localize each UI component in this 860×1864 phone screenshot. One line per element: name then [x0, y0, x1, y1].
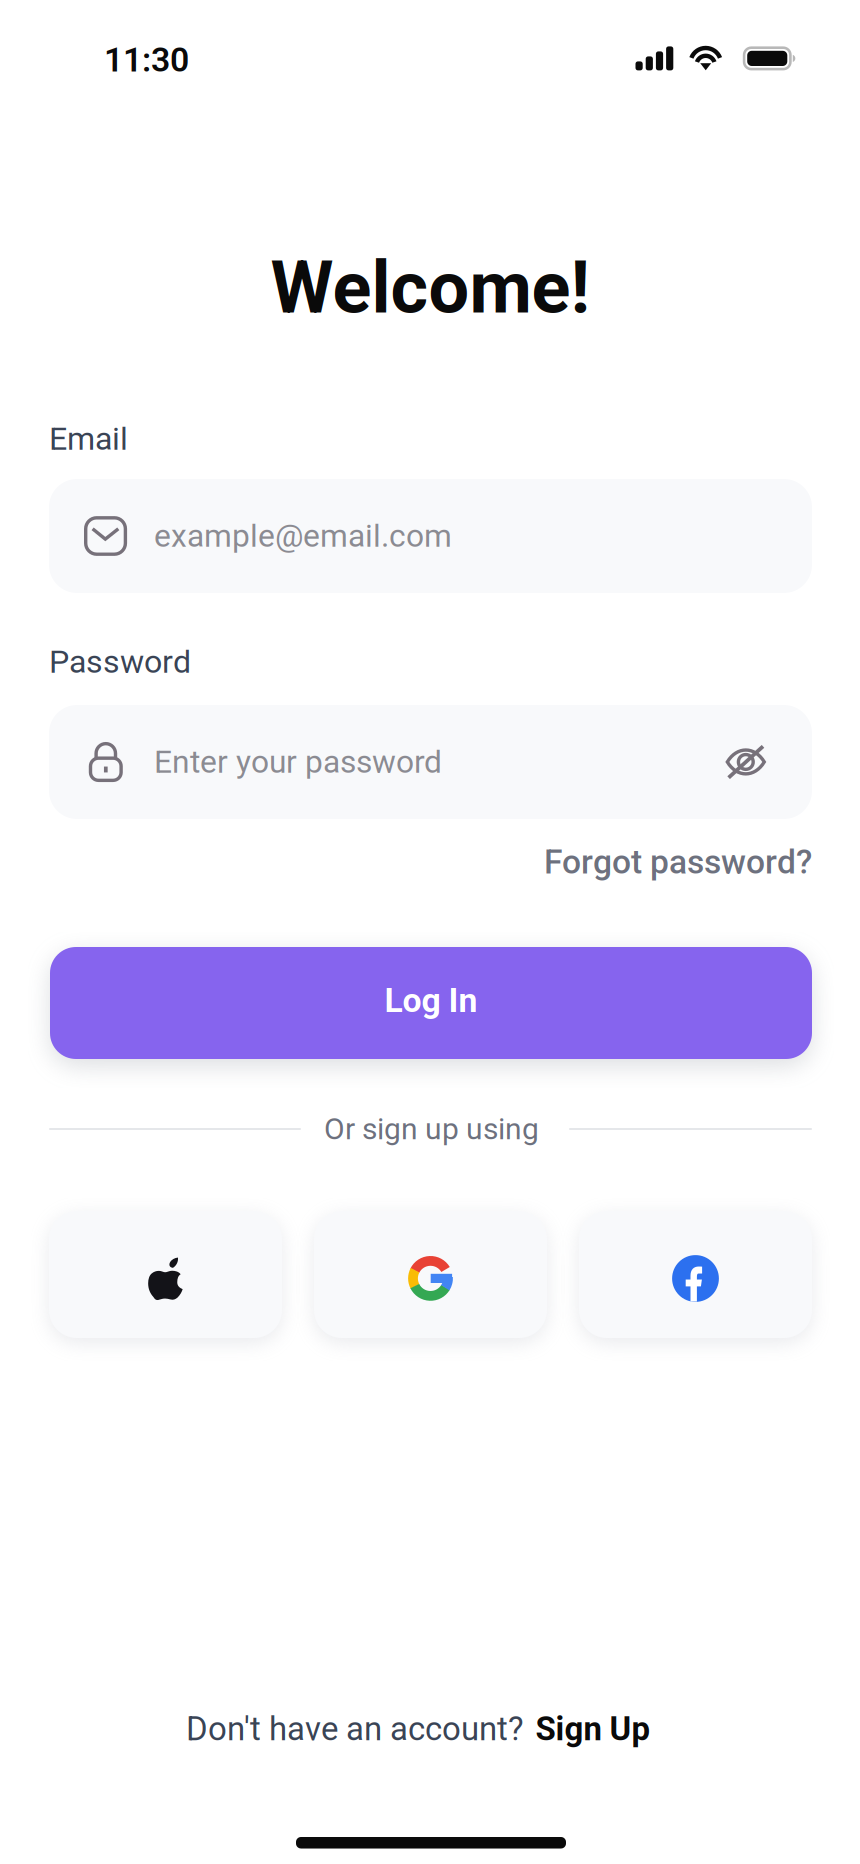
- staticText: 11:30: [104, 40, 189, 80]
- button[interactable]: Show password: [726, 745, 766, 779]
- staticText: Or sign up using: [324, 1111, 539, 1147]
- button[interactable]: Don't have an account?: [186, 1704, 746, 1754]
- button[interactable]: Forgot password?: [512, 840, 812, 884]
- button[interactable]: Enter your password: [49, 705, 812, 819]
- staticText: Sign Up: [535, 1710, 650, 1748]
- staticText: Enter your password: [154, 743, 442, 781]
- staticText: Forgot password?: [544, 842, 812, 882]
- button[interactable]: example@email.com: [49, 479, 812, 593]
- staticText: Welcome!: [270, 246, 589, 330]
- button[interactable]: Log In: [50, 947, 812, 1059]
- staticText: Password: [49, 643, 191, 681]
- staticText: Log In: [384, 981, 477, 1020]
- button[interactable]: Sign up with Facebook: [579, 1211, 812, 1338]
- staticText: Don't have an account?: [186, 1710, 524, 1748]
- button[interactable]: Sign up with Google: [314, 1211, 547, 1338]
- button[interactable]: Sign up with Apple: [49, 1211, 282, 1338]
- staticText: Email: [49, 420, 128, 458]
- staticText: example@email.com: [154, 517, 452, 555]
